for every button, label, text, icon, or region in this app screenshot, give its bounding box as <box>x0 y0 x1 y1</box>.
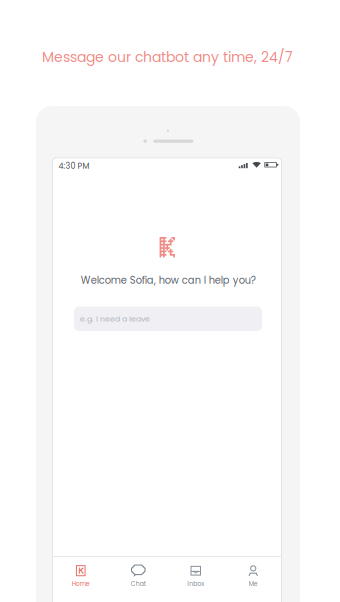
staticText: Welcome Sofia, how can I help you? <box>81 273 256 287</box>
button[interactable]: Inbox <box>167 561 224 592</box>
staticText: 4:30 PM <box>58 160 89 172</box>
staticText: Me <box>249 580 258 588</box>
button[interactable]: e.g. I need a leave <box>74 306 262 331</box>
button[interactable]: Home <box>52 561 109 592</box>
staticText: e.g. I need a leave <box>80 313 150 324</box>
staticText: Chat <box>131 580 146 588</box>
staticText: Message our chatbot any time, 24/7 <box>42 47 293 67</box>
button[interactable]: Chat <box>109 561 167 592</box>
button[interactable]: Me <box>224 561 282 592</box>
staticText: Inbox <box>187 580 204 588</box>
staticText: Home <box>72 580 90 588</box>
